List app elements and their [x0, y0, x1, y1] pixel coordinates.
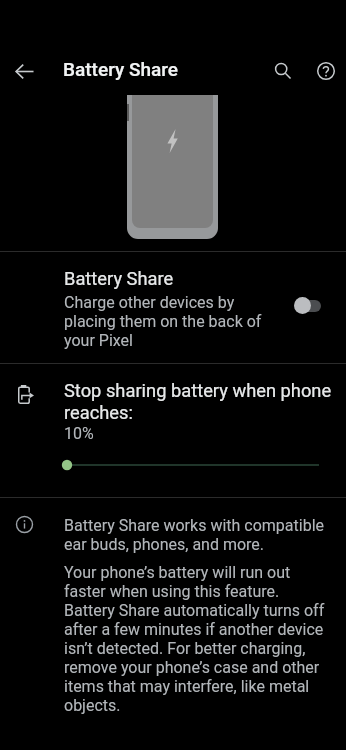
button[interactable]: Help — [303, 48, 346, 93]
staticText: Charge other devices by placing them on … — [64, 293, 278, 350]
button[interactable]: Battery Share — [0, 252, 346, 363]
staticText: Your phone’s battery will run out faster… — [64, 563, 330, 715]
button[interactable]: Search — [260, 48, 305, 93]
staticText: Battery Share works with compatible ear … — [64, 516, 330, 554]
staticText: Stop sharing battery when phone reaches: — [64, 380, 339, 424]
button[interactable]: Back — [2, 49, 47, 94]
button[interactable]: Battery Share toggle — [288, 283, 334, 329]
staticText: Battery Share — [63, 58, 178, 80]
button[interactable]: Battery level slider — [0, 447, 346, 483]
staticText: Battery Share — [64, 268, 174, 289]
staticText: 10% — [64, 424, 94, 443]
